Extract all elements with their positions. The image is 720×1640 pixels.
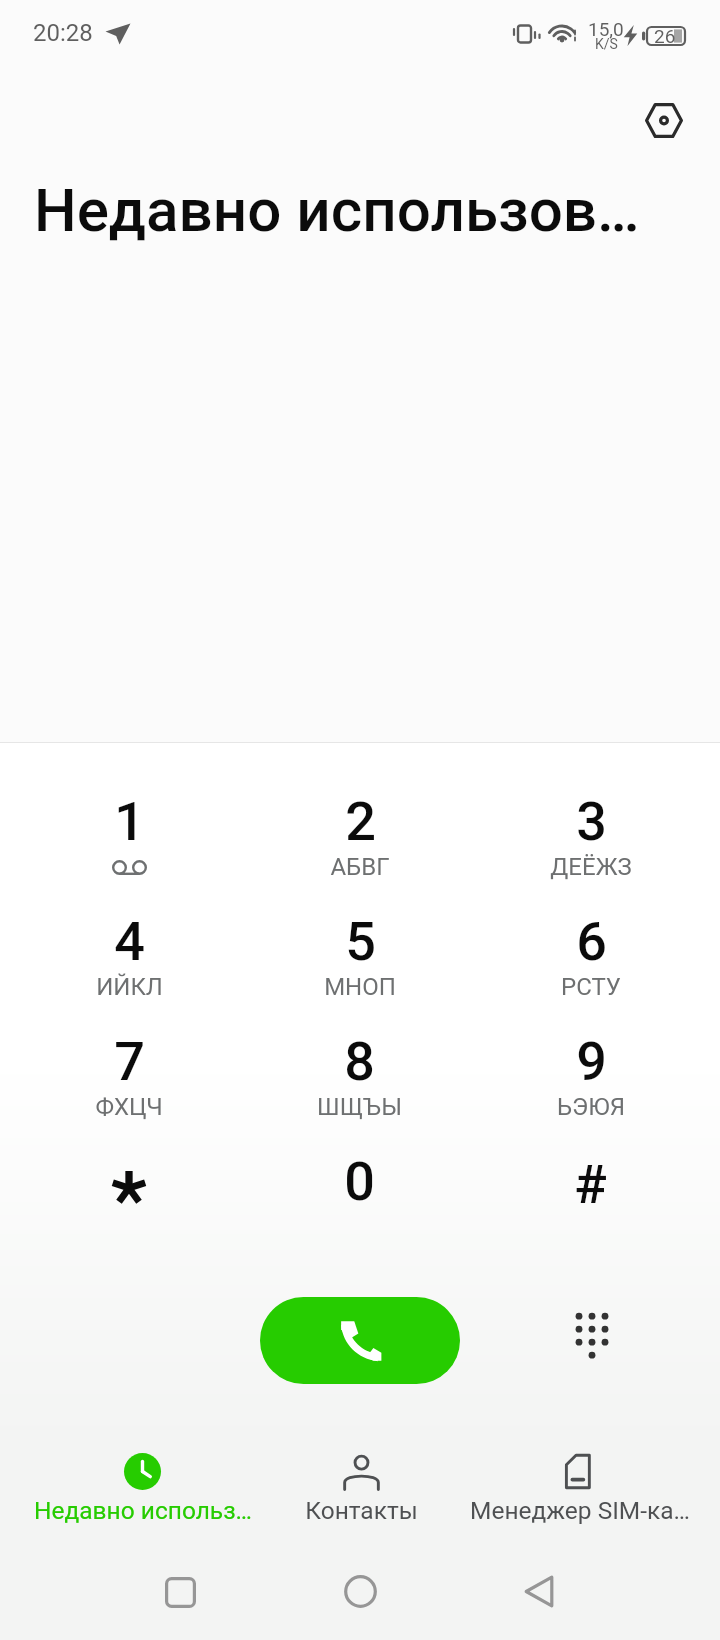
staticText: 7 [114,1030,145,1093]
button[interactable]: 8 [244,1012,475,1132]
button[interactable]: 3 [475,772,706,892]
staticText: ШЩЪЫ [317,1093,402,1121]
button[interactable]: 0 [244,1132,475,1252]
staticText: ЬЭЮЯ [557,1093,625,1121]
button[interactable]: 9 [475,1012,706,1132]
staticText: Контакты [305,1496,418,1525]
staticText: 6 [576,910,607,973]
button[interactable]: 4 [14,892,244,1012]
button[interactable]: Home [320,1551,400,1631]
button[interactable] [14,1132,244,1252]
staticText: 20:28 [33,19,93,47]
staticText: 2 [345,790,376,853]
staticText: 15,0 [588,18,624,40]
staticText: РСТУ [561,973,621,1001]
staticText: 26 [654,25,676,47]
button[interactable]: Settings [628,84,700,156]
button[interactable]: Recents [140,1552,220,1632]
staticText: ДЕЁЖЗ [550,853,632,881]
staticText: ФХЦЧ [95,1093,163,1121]
button[interactable]: 1 [14,772,244,892]
staticText: 0 [344,1150,375,1213]
button[interactable]: 7 [14,1012,244,1132]
staticText: Менеджер SIM-ка… [470,1496,688,1525]
button[interactable]: 6 [475,892,706,1012]
staticText: АБВГ [330,853,390,881]
staticText: 5 [345,910,376,973]
staticText: 1 [114,790,145,853]
button[interactable]: # [475,1132,706,1252]
button[interactable]: Call [260,1297,460,1384]
button[interactable]: Hide dialpad [554,1297,630,1373]
button[interactable]: Менеджер SIM-ка… [470,1442,688,1554]
staticText: 8 [344,1030,375,1093]
button[interactable]: Контакты [252,1442,470,1554]
staticText: 3 [576,790,607,853]
staticText: # [574,1153,607,1216]
button[interactable]: Недавно использ… [33,1442,252,1554]
staticText: МНОП [324,973,396,1001]
button[interactable]: Back [499,1551,579,1631]
staticText: Недавно использов… [34,175,640,245]
staticText: ИЙКЛ [96,973,163,1001]
staticText: K/S [595,36,618,52]
button[interactable]: 2 [244,772,475,892]
staticText: Недавно использ… [34,1496,252,1525]
staticText: 9 [576,1030,607,1093]
button[interactable]: 5 [244,892,475,1012]
staticText: 4 [114,910,145,973]
